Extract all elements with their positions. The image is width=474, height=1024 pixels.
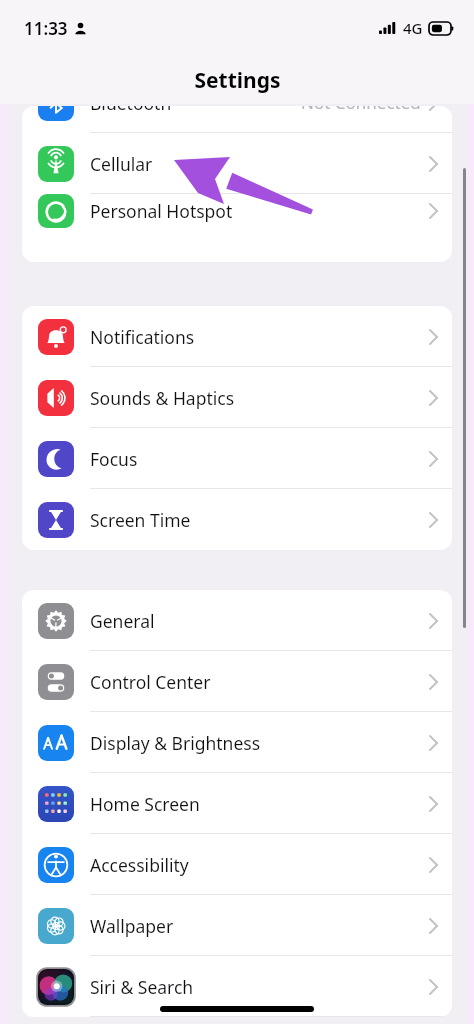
button[interactable]: Sounds & Haptics — [22, 367, 452, 428]
button[interactable]: Focus — [22, 428, 452, 489]
staticText: Home Screen — [90, 792, 200, 816]
staticText: Siri & Search — [90, 975, 194, 999]
button[interactable]: Cellular — [22, 133, 452, 194]
staticText: Cellular — [90, 152, 153, 176]
staticText: Control Center — [90, 670, 211, 694]
staticText: Bluetooth — [90, 106, 172, 115]
staticText: Screen Time — [90, 508, 191, 532]
staticText: General — [90, 609, 155, 633]
button[interactable]: Wallpaper — [22, 895, 452, 956]
button[interactable]: Notifications — [22, 306, 452, 367]
staticText: 11:33 — [24, 17, 68, 40]
button[interactable]: Accessibility — [22, 834, 452, 895]
staticText: Sounds & Haptics — [90, 386, 235, 410]
button[interactable]: Screen Time — [22, 489, 452, 550]
button[interactable]: Bluetooth — [22, 106, 452, 133]
staticText: Display & Brightness — [90, 731, 261, 755]
button[interactable]: General — [22, 590, 452, 651]
button[interactable]: Personal Hotspot — [22, 194, 452, 228]
button[interactable]: Control Center — [22, 651, 452, 712]
staticText: Wallpaper — [90, 914, 174, 938]
staticText: Focus — [90, 447, 138, 471]
staticText: Not Connected — [301, 106, 421, 114]
button[interactable]: Display & Brightness — [22, 712, 452, 773]
button[interactable]: Siri & Search — [22, 956, 452, 1017]
staticText: Accessibility — [90, 853, 189, 877]
button[interactable]: Home Screen — [22, 773, 452, 834]
staticText: 4G — [403, 18, 423, 38]
staticText: Notifications — [90, 325, 195, 349]
staticText: Personal Hotspot — [90, 199, 233, 223]
staticText: Settings — [194, 66, 281, 95]
